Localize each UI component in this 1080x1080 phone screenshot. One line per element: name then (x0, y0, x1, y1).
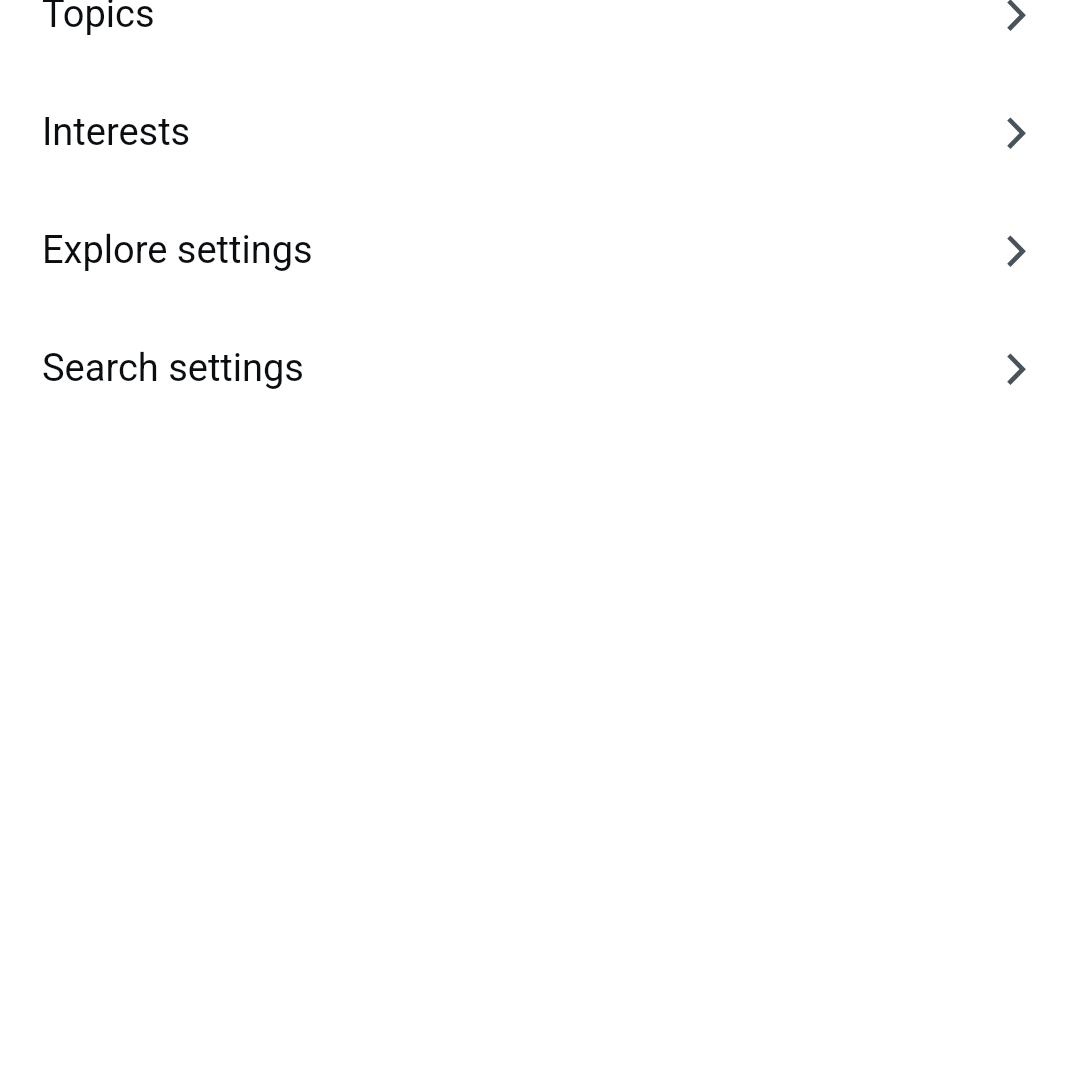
other: Open Explore settings (992, 226, 1040, 274)
staticText: Topics (42, 0, 155, 37)
button[interactable]: Explore settings (0, 191, 1080, 309)
staticText: Search settings (42, 346, 304, 391)
staticText: Explore settings (42, 228, 313, 273)
other: Open Interests (992, 108, 1040, 156)
button[interactable]: Topics (0, 0, 1080, 73)
button[interactable]: Interests (0, 73, 1080, 191)
other: Open Topics (992, 0, 1040, 38)
staticText: Interests (42, 110, 191, 155)
other: Open Search settings (992, 344, 1040, 392)
button[interactable]: Search settings (0, 309, 1080, 427)
